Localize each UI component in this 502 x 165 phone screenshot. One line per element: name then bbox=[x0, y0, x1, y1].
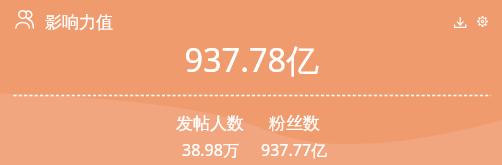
button[interactable]: 粉丝数 bbox=[261, 113, 328, 161]
staticText: 38.98万 bbox=[182, 139, 239, 161]
staticText: 937.78亿 bbox=[184, 37, 319, 81]
button[interactable]: 发帖人数 bbox=[176, 113, 244, 161]
button[interactable]: Download bbox=[448, 11, 472, 33]
staticText: 937.77亿 bbox=[261, 139, 328, 161]
staticText: 粉丝数 bbox=[269, 113, 320, 134]
button[interactable]: 影响力值 bbox=[45, 6, 113, 38]
button[interactable]: Profile bbox=[10, 6, 38, 33]
staticText: 发帖人数 bbox=[176, 113, 244, 134]
staticText: 影响力值 bbox=[45, 12, 113, 33]
button[interactable]: Settings bbox=[471, 10, 494, 33]
